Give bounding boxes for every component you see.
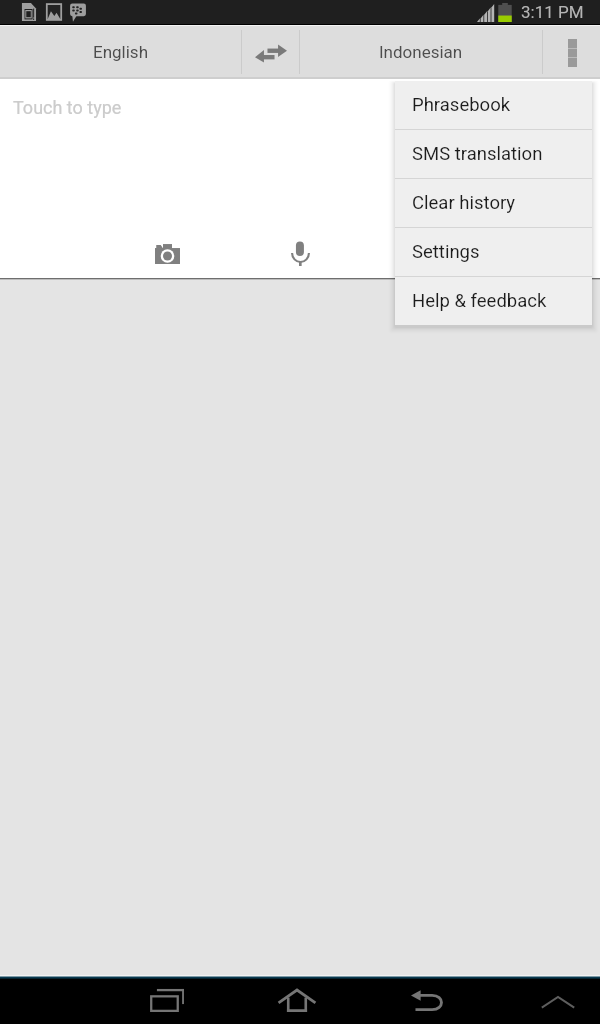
button[interactable]: Clear history	[395, 179, 592, 227]
staticText: Clear history	[412, 192, 516, 214]
button[interactable]: Swap languages	[242, 26, 299, 77]
button[interactable]: Recent apps	[134, 979, 200, 1024]
staticText: English	[93, 42, 149, 62]
staticText: Help & feedback	[412, 290, 547, 312]
button[interactable]: Expand	[525, 979, 591, 1024]
staticText: Indonesian	[379, 42, 463, 62]
staticText: 3:11 PM	[521, 2, 584, 22]
staticText: Settings	[412, 241, 480, 263]
button[interactable]: Indonesian	[300, 26, 542, 77]
button[interactable]: Help & feedback	[395, 277, 592, 325]
button[interactable]: SMS translation	[395, 130, 592, 178]
button[interactable]: Settings	[395, 228, 592, 276]
staticText: SMS translation	[412, 143, 543, 165]
button[interactable]: Phrasebook	[395, 81, 592, 129]
button[interactable]: English	[0, 26, 241, 77]
button[interactable]: More options	[543, 26, 600, 77]
button[interactable]: Home	[264, 979, 330, 1024]
button[interactable]: Voice input	[268, 229, 332, 278]
button[interactable]: Camera input	[135, 229, 199, 278]
staticText: Phrasebook	[412, 94, 511, 116]
button[interactable]: Touch to type	[0, 79, 600, 278]
staticText: Touch to type	[13, 97, 122, 118]
button[interactable]: Back	[394, 979, 460, 1024]
